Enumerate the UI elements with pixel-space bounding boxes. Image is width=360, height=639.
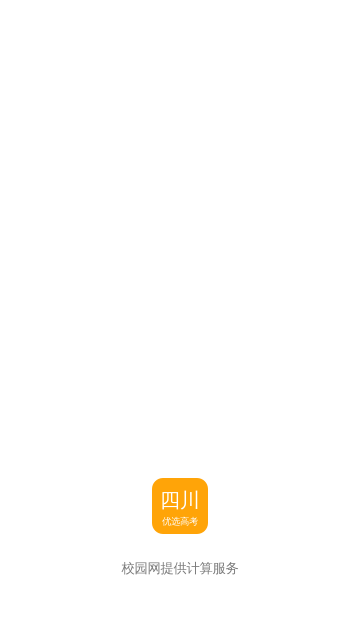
staticText: 四川: [160, 488, 200, 513]
staticText: 校园网提供计算服务: [121, 560, 238, 576]
staticText: 优选高考: [162, 516, 198, 527]
